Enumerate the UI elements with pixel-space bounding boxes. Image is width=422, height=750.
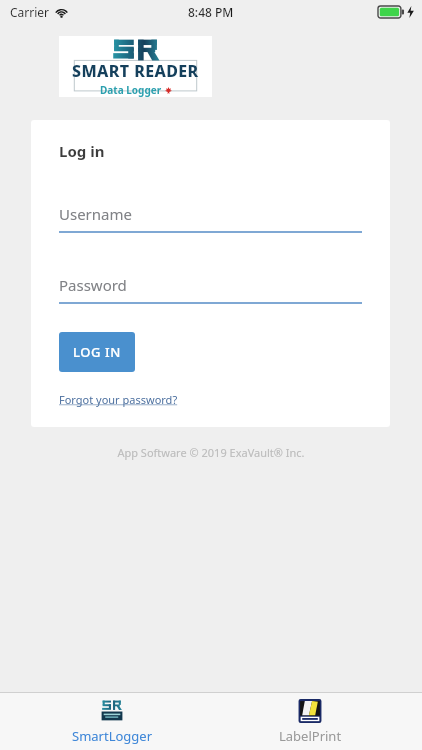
- button[interactable]: Password: [59, 275, 362, 304]
- staticText: LOG IN: [73, 343, 121, 361]
- staticText: Data Logger: [100, 83, 162, 97]
- staticText: Forgot your password?: [59, 392, 178, 407]
- button[interactable]: SmartLogger tab: [27, 698, 197, 745]
- button[interactable]: LabelPrint tab: [225, 698, 395, 745]
- staticText: Password: [59, 275, 127, 295]
- staticText: Username: [59, 204, 132, 224]
- staticText: App Software © 2019 ExaVault® Inc.: [0, 445, 422, 460]
- button[interactable]: Username: [59, 204, 362, 233]
- staticText: LabelPrint: [279, 727, 342, 745]
- button[interactable]: LOG IN: [59, 332, 135, 372]
- staticText: SMART READER: [72, 60, 199, 82]
- staticText: SmartLogger: [72, 727, 153, 745]
- button[interactable]: Forgot your password?: [59, 392, 178, 407]
- staticText: Log in: [59, 141, 105, 161]
- staticText: 8:48 PM: [188, 4, 234, 20]
- staticText: Carrier: [10, 4, 50, 20]
